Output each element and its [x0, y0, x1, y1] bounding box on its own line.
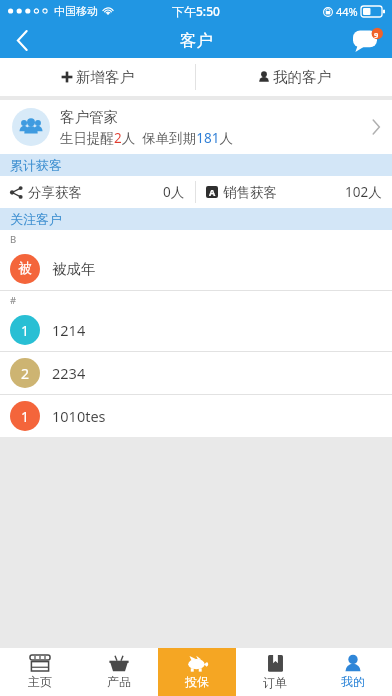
button[interactable]: 产品 — [79, 648, 158, 696]
staticText: 投保 — [185, 674, 209, 689]
staticText: 累计获客 — [10, 157, 62, 173]
staticText: 客户管家 — [60, 108, 118, 126]
staticText: 2 — [21, 364, 30, 383]
button[interactable]: 我的客户 — [196, 58, 392, 96]
staticText: 1 — [21, 407, 30, 426]
staticText: 1214 — [52, 320, 86, 340]
staticText: 关注客户 — [10, 211, 62, 227]
staticText: 中国移动 — [54, 4, 98, 18]
button[interactable]: 主页 — [0, 648, 79, 696]
button[interactable]: 1 — [0, 395, 392, 437]
staticText: 2234 — [52, 363, 86, 383]
button[interactable]: 新增客户 — [0, 58, 195, 96]
button[interactable]: 2 — [0, 352, 392, 394]
staticText: 新增客户 — [76, 68, 134, 86]
staticText: 被成年 — [52, 260, 96, 278]
staticText: 44% — [336, 4, 358, 19]
staticText: 被 — [18, 260, 32, 278]
staticText: # — [10, 294, 17, 307]
staticText: 生日提醒2人 保单到期181人 — [60, 129, 233, 147]
button[interactable]: 分享获客 — [0, 176, 195, 208]
staticText: 分享获客 — [28, 184, 82, 201]
staticText: B — [10, 233, 17, 246]
staticText: 主页 — [28, 674, 52, 689]
button[interactable]: 客户管家 — [0, 100, 392, 154]
staticText: 1010tes — [52, 406, 106, 426]
staticText: 我的客户 — [273, 68, 331, 86]
staticText: 0人 — [163, 183, 185, 201]
staticText: 产品 — [107, 674, 131, 689]
staticText: 9 — [374, 30, 379, 40]
button[interactable]: A — [196, 176, 392, 208]
button[interactable]: 我的 — [314, 648, 392, 696]
staticText: 102人 — [345, 183, 382, 201]
button[interactable]: 1 — [0, 309, 392, 351]
button[interactable]: 投保 — [158, 648, 236, 696]
staticText: 下午5:50 — [172, 3, 220, 19]
staticText: 订单 — [263, 675, 287, 690]
staticText: A — [209, 186, 216, 198]
staticText: 销售获客 — [223, 184, 277, 201]
button[interactable]: 订单 — [236, 648, 314, 696]
button[interactable]: 被 — [0, 248, 392, 290]
staticText: 1 — [21, 321, 30, 340]
button[interactable]: Messages — [344, 22, 392, 58]
button[interactable]: Back — [0, 22, 44, 58]
staticText: 客户 — [180, 30, 213, 51]
staticText: 我的 — [341, 674, 365, 689]
